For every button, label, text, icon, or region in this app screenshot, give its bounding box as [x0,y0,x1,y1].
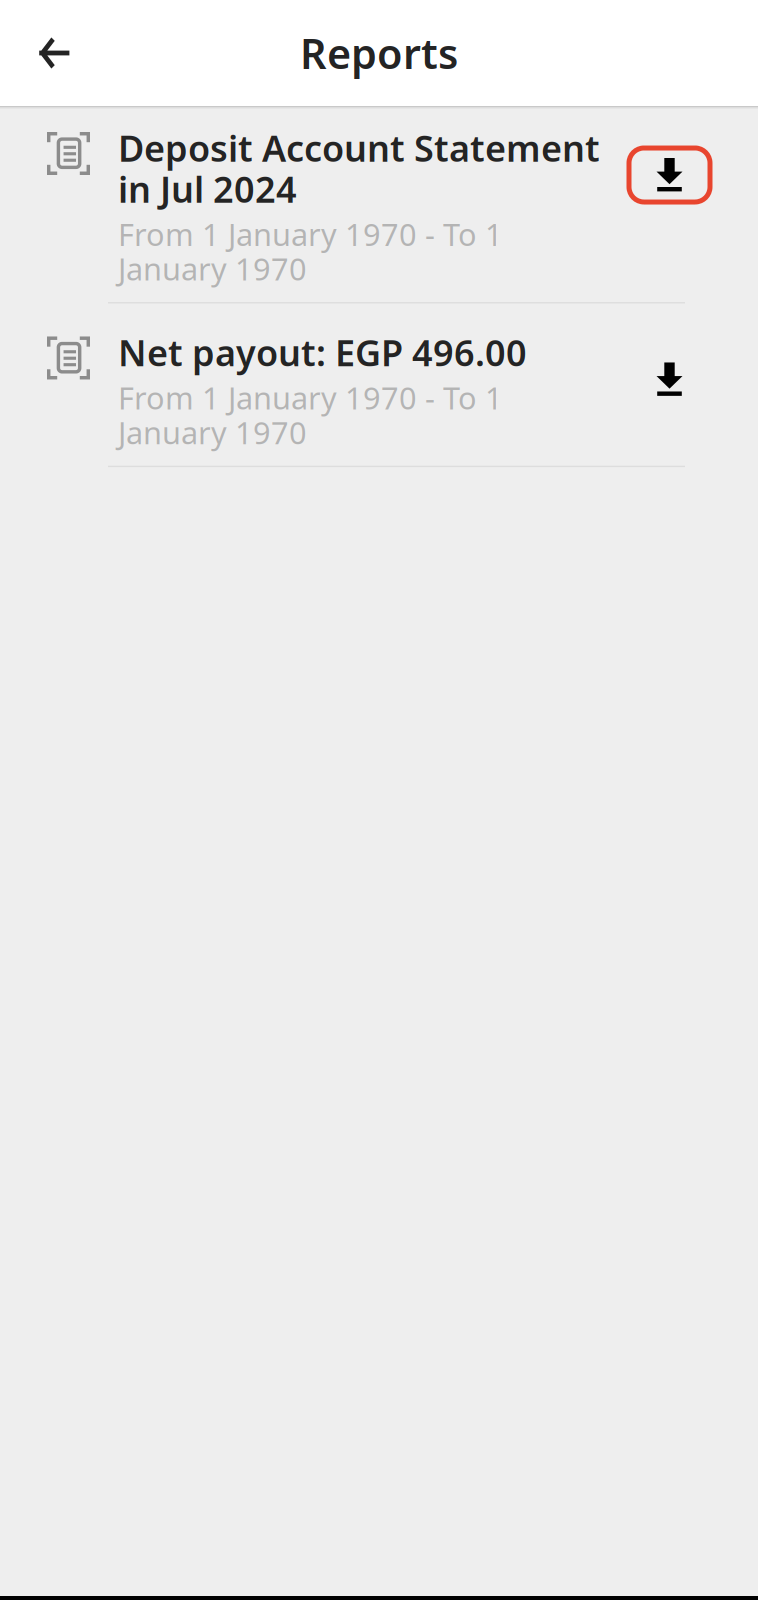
staticText: From 1 January 1970 - To 1 [118,377,503,418]
staticText: January 1970 [118,248,307,289]
staticText: Net payout: EGP 496.00 [118,328,527,376]
staticText: Reports [300,26,458,80]
staticText: in Jul 2024 [118,165,297,213]
staticText: Deposit Account Statement [118,124,600,172]
button[interactable]: Download [629,148,710,202]
button[interactable]: Download [629,352,710,406]
staticText: From 1 January 1970 - To 1 [118,214,503,254]
staticText: January 1970 [118,412,307,453]
button[interactable]: Back [22,21,86,85]
